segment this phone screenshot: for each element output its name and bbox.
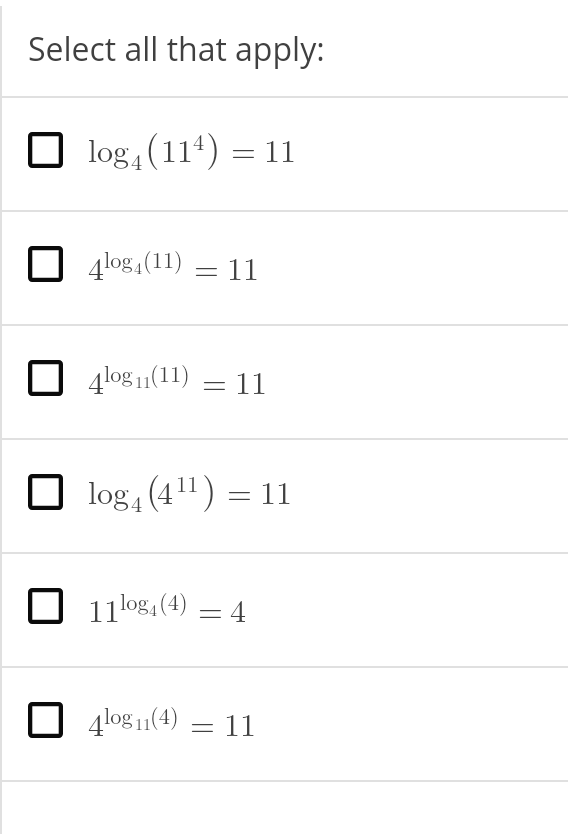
staticText: 4 — [131, 145, 143, 177]
staticText: 11 — [161, 126, 194, 171]
staticText: (4) — [159, 585, 188, 617]
staticText: 4 — [88, 244, 105, 289]
staticText: log — [88, 468, 129, 513]
staticText: 11 — [88, 586, 121, 631]
staticText: log — [104, 243, 133, 275]
staticText: 11 — [176, 467, 199, 499]
staticText: 4 — [131, 487, 143, 519]
button[interactable]: 11 to the log base 4 of 4 equals 4 — [0, 554, 568, 666]
button[interactable]: 4 to the log base 4 of 11 equals 11 — [0, 212, 568, 324]
staticText: 11 — [264, 126, 297, 171]
staticText: (4) — [150, 699, 179, 731]
staticText: = — [198, 586, 223, 631]
staticText: 11 — [135, 712, 152, 735]
staticText: 4 — [88, 358, 105, 403]
staticText: log — [104, 357, 133, 389]
staticText: log — [120, 585, 149, 617]
staticText: 11 — [227, 244, 260, 289]
staticText: = — [194, 244, 219, 289]
staticText: 11 — [260, 468, 293, 513]
staticText: (11) — [143, 243, 183, 275]
staticText: 4 — [193, 125, 205, 157]
staticText: Select all that apply: — [28, 27, 325, 71]
staticText: 4 — [230, 586, 247, 631]
staticText: 4 — [149, 598, 158, 621]
staticText: ) — [202, 461, 217, 514]
staticText: 4 — [157, 468, 174, 513]
staticText: = — [227, 468, 252, 513]
staticText: 4 — [134, 256, 143, 279]
staticText: 11 — [135, 370, 152, 393]
button[interactable]: 4 to the log base 11 of 4 equals 11 — [0, 668, 568, 780]
staticText: = — [231, 126, 256, 171]
button[interactable]: log base 4 of 4 to the 11 equals 11 — [0, 440, 568, 552]
staticText: ) — [206, 119, 221, 172]
staticText: (11) — [150, 357, 190, 389]
staticText: = — [202, 358, 227, 403]
button[interactable]: 4 to the log base 11 of 11 equals 11 — [0, 326, 568, 438]
staticText: ( — [145, 119, 160, 172]
staticText: ( — [146, 461, 161, 514]
staticText: = — [190, 700, 215, 745]
staticText: 4 — [88, 700, 105, 745]
staticText: log — [104, 699, 133, 731]
button[interactable]: log base 4 of 11 to the 4 equals 11 — [0, 98, 568, 210]
staticText: 11 — [235, 358, 268, 403]
staticText: log — [88, 126, 129, 171]
staticText: 11 — [224, 700, 257, 745]
